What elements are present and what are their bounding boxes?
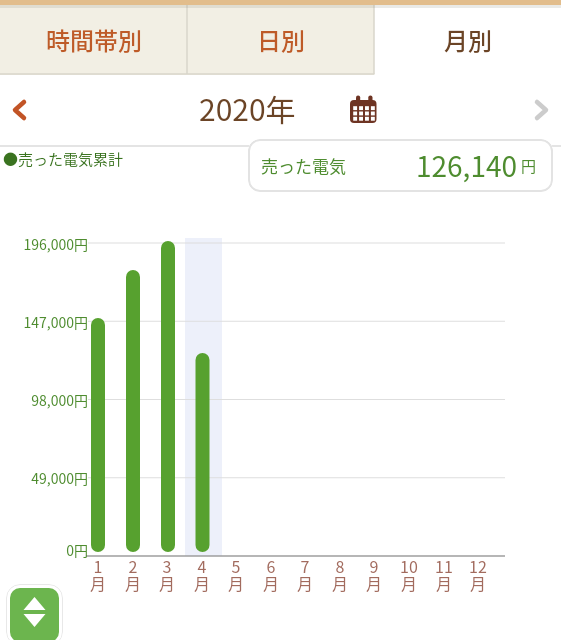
button[interactable]: 日別 — [187, 0, 374, 75]
staticText: 2 月 — [116, 554, 150, 595]
staticText: 1 月 — [81, 554, 115, 595]
staticText: 49,000円 — [0, 468, 88, 488]
staticText: 9 月 — [357, 554, 391, 595]
staticText: 126,140 — [416, 145, 518, 186]
staticText: 11 月 — [427, 554, 461, 595]
staticText: 月別 — [444, 22, 492, 57]
staticText: 売った電気 — [261, 153, 346, 178]
staticText: 0円 — [0, 540, 88, 560]
staticText: 3 月 — [150, 554, 184, 595]
staticText: 8 月 — [323, 554, 357, 595]
staticText: ●売った電気累計 — [3, 148, 124, 170]
staticText: 7 月 — [288, 554, 322, 595]
button[interactable]: 時間帯別 — [0, 0, 187, 75]
staticText: 円 — [521, 155, 537, 177]
staticText: 12 月 — [461, 554, 495, 595]
staticText: 6 月 — [254, 554, 288, 595]
staticText: 4 月 — [185, 554, 219, 595]
staticText: 2020年 — [199, 86, 296, 129]
staticText: 5 月 — [219, 554, 253, 595]
button[interactable]: 月別 — [374, 0, 561, 75]
staticText: 98,000円 — [0, 390, 88, 410]
staticText: 時間帯別 — [46, 22, 142, 57]
staticText: 日別 — [257, 22, 305, 57]
staticText: 196,000円 — [0, 234, 88, 254]
staticText: 10 月 — [392, 554, 426, 595]
button[interactable] — [10, 588, 59, 640]
button[interactable]: 売った電気 — [248, 139, 553, 192]
staticText: 147,000円 — [0, 312, 88, 332]
